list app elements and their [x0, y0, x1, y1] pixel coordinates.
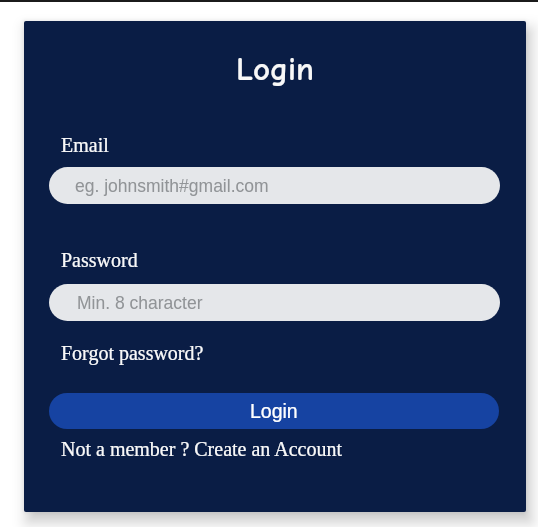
staticText: Forgot password?: [61, 342, 204, 364]
staticText: Not a member ? Create an Account: [61, 438, 342, 460]
button[interactable]: Forgot password?: [61, 342, 204, 364]
button[interactable]: eg. johnsmith#gmail.com: [49, 167, 500, 204]
button[interactable]: Min. 8 character: [49, 284, 500, 321]
staticText: Password: [61, 249, 138, 271]
staticText: Email: [61, 134, 109, 156]
button[interactable]: Login: [49, 393, 499, 429]
staticText: eg. johnsmith#gmail.com: [75, 176, 269, 196]
staticText: Login: [236, 50, 315, 88]
button[interactable]: Not a member ? Create an Account: [61, 438, 342, 460]
staticText: Min. 8 character: [77, 293, 203, 313]
staticText: Login: [250, 400, 298, 422]
